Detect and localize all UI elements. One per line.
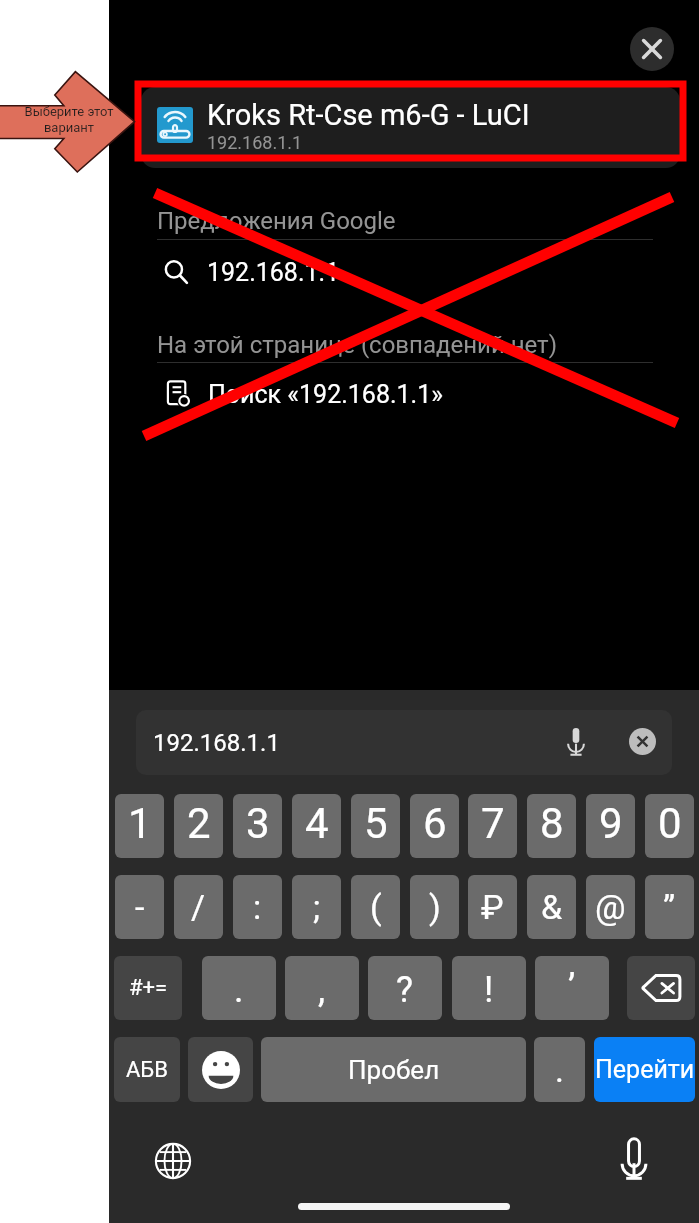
- staticText: Перейти: [595, 1055, 695, 1084]
- button[interactable]: &: [527, 875, 576, 939]
- button[interactable]: @: [586, 875, 635, 939]
- staticText: Пробел: [348, 1055, 440, 1085]
- staticText: @: [595, 887, 626, 927]
- button[interactable]: Микрофон: [610, 1135, 658, 1183]
- staticText: 2: [187, 799, 211, 848]
- button[interactable]: -: [115, 875, 164, 939]
- button[interactable]: Перейти: [594, 1037, 695, 1102]
- button[interactable]: Голосовой ввод: [557, 723, 595, 761]
- staticText: ₽: [481, 887, 504, 927]
- staticText: 8: [540, 799, 564, 848]
- staticText: На этой странице (совпадений нет): [157, 331, 558, 359]
- button[interactable]: Поиск «192.168.1.1»: [157, 370, 647, 418]
- button[interactable]: 6: [410, 794, 459, 858]
- staticText: ”: [663, 887, 676, 927]
- button[interactable]: ,: [285, 956, 359, 1020]
- staticText: !: [484, 969, 494, 1011]
- button[interactable]: 8: [527, 794, 576, 858]
- staticText: 0: [658, 799, 682, 848]
- staticText: ;: [313, 887, 321, 927]
- staticText: &: [541, 887, 563, 927]
- staticText: АБВ: [126, 1057, 168, 1083]
- staticText: /: [191, 887, 206, 927]
- button[interactable]: 192.168.1.1: [136, 710, 672, 775]
- button[interactable]: Удалить: [627, 956, 695, 1020]
- staticText: 6: [423, 799, 447, 848]
- button[interactable]: 0: [645, 794, 694, 858]
- staticText: #+=: [129, 975, 168, 1001]
- button[interactable]: АБВ: [114, 1037, 180, 1102]
- button[interactable]: (: [351, 875, 400, 939]
- button[interactable]: Сменить язык: [151, 1139, 195, 1183]
- button[interactable]: !: [452, 956, 526, 1020]
- button[interactable]: 7: [468, 794, 517, 858]
- button[interactable]: :: [233, 875, 282, 939]
- button[interactable]: 1: [115, 794, 164, 858]
- staticText: -: [135, 887, 145, 927]
- button[interactable]: Пробел: [261, 1037, 526, 1102]
- staticText: .: [555, 1050, 564, 1090]
- staticText: ): [429, 887, 441, 927]
- staticText: 7: [481, 799, 505, 848]
- button[interactable]: Очистить: [629, 728, 656, 755]
- button[interactable]: 3: [233, 794, 282, 858]
- button[interactable]: .: [202, 956, 276, 1020]
- staticText: 3: [246, 799, 270, 848]
- staticText: Выберите этот вариант: [19, 104, 119, 135]
- button[interactable]: ”: [645, 875, 694, 939]
- staticText: 192.168.1.1: [207, 258, 340, 287]
- staticText: ,: [318, 969, 326, 1011]
- staticText: .: [234, 969, 244, 1011]
- staticText: :: [253, 887, 262, 927]
- button[interactable]: ): [410, 875, 459, 939]
- button[interactable]: #+=: [114, 956, 182, 1020]
- button[interactable]: 192.168.1.1: [157, 248, 647, 296]
- staticText: 192.168.1.1: [207, 132, 303, 153]
- button[interactable]: Закрыть: [630, 27, 674, 71]
- staticText: ’: [568, 967, 576, 1009]
- button[interactable]: ?: [368, 956, 442, 1020]
- button[interactable]: Эмодзи: [188, 1037, 253, 1102]
- button[interactable]: 4: [292, 794, 341, 858]
- staticText: ?: [396, 969, 414, 1011]
- button[interactable]: 2: [174, 794, 223, 858]
- button[interactable]: 5: [351, 794, 400, 858]
- button[interactable]: ₽: [468, 875, 517, 939]
- button[interactable]: Kroks Rt-Cse m6-G - LuCI: [141, 87, 680, 168]
- button[interactable]: .: [534, 1037, 585, 1102]
- staticText: Поиск «192.168.1.1»: [208, 380, 443, 409]
- staticText: (: [370, 887, 382, 927]
- staticText: 192.168.1.1: [153, 729, 280, 757]
- staticText: Предложения Google: [157, 207, 396, 235]
- staticText: 4: [305, 799, 329, 848]
- button[interactable]: /: [174, 875, 223, 939]
- staticText: 1: [128, 799, 152, 848]
- staticText: 5: [364, 799, 388, 848]
- button[interactable]: ;: [292, 875, 341, 939]
- button[interactable]: 9: [586, 794, 635, 858]
- button[interactable]: ’: [535, 956, 609, 1020]
- staticText: Kroks Rt-Cse m6-G - LuCI: [207, 98, 530, 132]
- staticText: 9: [599, 799, 623, 848]
